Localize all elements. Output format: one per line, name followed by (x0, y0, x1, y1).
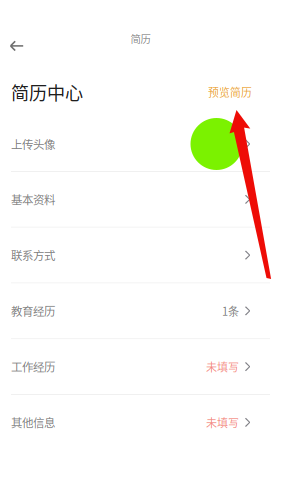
button[interactable]: Back (0, 19, 44, 57)
staticText: 简历 (130, 31, 150, 46)
staticText: 其他信息 (11, 414, 55, 431)
staticText: 上传头像 (11, 136, 55, 152)
staticText: 联系方式 (11, 247, 55, 263)
staticText: 未填写 (206, 414, 239, 430)
button[interactable]: 上传头像 (0, 117, 281, 172)
button[interactable]: 其他信息 (0, 395, 281, 450)
staticText: 基本资料 (11, 191, 55, 208)
button[interactable]: 工作经历 (0, 339, 281, 395)
staticText: 工作经历 (11, 358, 55, 375)
button[interactable]: 联系方式 (0, 228, 281, 284)
button[interactable]: 预览简历 (206, 75, 254, 109)
staticText: 未填写 (206, 359, 239, 375)
staticText: 简历中心 (11, 79, 83, 105)
button[interactable]: 基本资料 (0, 172, 281, 228)
staticText: 预览简历 (208, 84, 252, 100)
button[interactable]: 教育经历 (0, 283, 281, 339)
staticText: 1条 (222, 303, 239, 319)
staticText: 教育经历 (11, 303, 55, 319)
